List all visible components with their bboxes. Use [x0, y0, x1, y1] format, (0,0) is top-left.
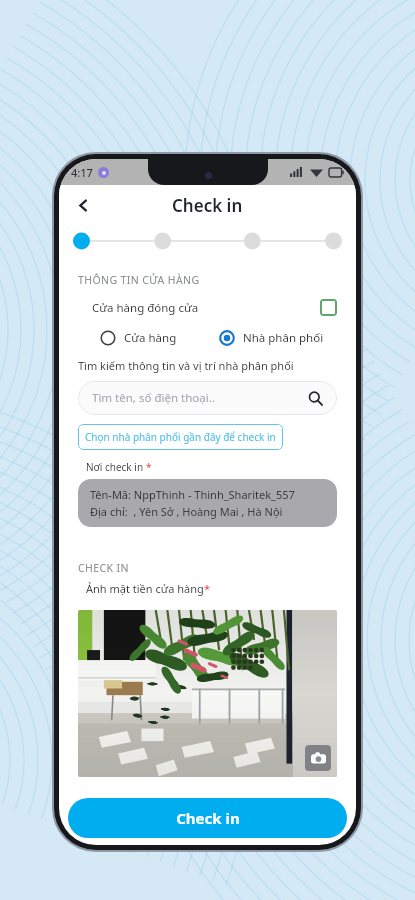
button[interactable]: Cửa hàng đóng cửa — [78, 299, 337, 316]
staticText: THÔNG TIN CỬA HÀNG — [78, 273, 200, 287]
button[interactable]: Take photo — [305, 745, 331, 771]
staticText: Chọn nhà phân phối gần đây để check in — [85, 430, 276, 444]
button[interactable]: Cửa hàng — [100, 330, 177, 346]
staticText: Cửa hàng đóng cửa — [92, 300, 199, 316]
button[interactable]: Check in — [68, 798, 347, 838]
staticText: Tên-Mã: NppThinh - Thinh_Sharitek_557 — [90, 487, 295, 502]
staticText: Check in — [176, 808, 240, 828]
staticText: * — [146, 460, 152, 474]
staticText: Nơi check in — [86, 460, 146, 474]
staticText: Check in — [172, 194, 243, 217]
staticText: Tìm kiếm thông tin và vị trí nhà phân ph… — [78, 358, 294, 373]
button[interactable]: Chọn nhà phân phối gần đây để check in — [78, 424, 283, 450]
staticText: * — [204, 581, 211, 596]
staticText: 4:17 — [71, 165, 93, 180]
button[interactable]: Back — [67, 189, 99, 221]
staticText: Tìm tên, số điện thoại.. — [92, 390, 215, 406]
staticText: Địa chỉ: , Yên Sở , Hoàng Mai , Hà Nội — [90, 504, 283, 519]
staticText: Cửa hàng — [124, 330, 177, 346]
staticText: Ảnh mặt tiền cửa hàng — [86, 581, 204, 596]
button[interactable]: Nhà phân phối — [219, 330, 324, 346]
button[interactable]: Tên-Mã: NppThinh - Thinh_Sharitek_557 — [78, 479, 337, 527]
button[interactable]: Tìm tên, số điện thoại.. — [78, 381, 337, 415]
staticText: CHECK IN — [78, 561, 129, 575]
staticText: Nhà phân phối — [243, 330, 324, 346]
